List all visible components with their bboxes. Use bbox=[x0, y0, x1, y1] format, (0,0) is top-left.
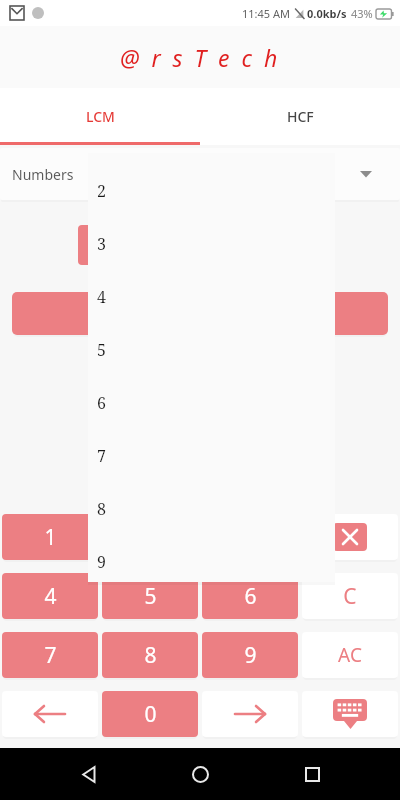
staticText: 5 bbox=[97, 339, 106, 361]
staticText: 7 bbox=[97, 445, 106, 467]
button[interactable]: 4 bbox=[2, 573, 98, 619]
staticText: 0.0kb/s bbox=[307, 6, 347, 21]
button[interactable]: 6 bbox=[202, 573, 298, 619]
button[interactable]: 9 bbox=[202, 632, 298, 678]
button[interactable]: 0 bbox=[102, 691, 198, 737]
button[interactable]: 7 bbox=[2, 632, 98, 678]
button[interactable]: AC bbox=[302, 632, 398, 678]
button[interactable]: 5 bbox=[88, 323, 335, 376]
button[interactable]: 8 bbox=[102, 632, 198, 678]
staticText: 6 bbox=[97, 392, 106, 414]
other: Open dropdown bbox=[360, 168, 372, 180]
staticText: 2 bbox=[97, 180, 106, 202]
staticText: 5 bbox=[144, 582, 157, 611]
staticText: 11:45 AM bbox=[242, 6, 290, 21]
staticText: 43% bbox=[351, 6, 373, 21]
button[interactable]: 6 bbox=[88, 376, 335, 429]
staticText: Numbers bbox=[12, 165, 74, 184]
button[interactable]: 1 bbox=[2, 514, 98, 560]
button[interactable]: Delete bbox=[302, 514, 398, 560]
button[interactable]: LCM bbox=[0, 88, 200, 145]
button[interactable]: Next bbox=[202, 691, 298, 737]
staticText: LCM bbox=[86, 107, 115, 126]
staticText: 6 bbox=[244, 582, 257, 611]
staticText: 8 bbox=[97, 498, 106, 520]
button[interactable]: HCF bbox=[200, 88, 400, 145]
button[interactable]: 2 bbox=[102, 514, 198, 560]
button[interactable]: Com-Multiplication bbox=[12, 292, 388, 335]
button[interactable]: 8 bbox=[88, 482, 335, 535]
button[interactable]: Recent apps bbox=[288, 750, 336, 798]
staticText: 9 bbox=[244, 641, 257, 670]
staticText: 4 bbox=[97, 286, 106, 308]
button[interactable]: Numbers bbox=[0, 148, 400, 200]
button[interactable]: 9 bbox=[88, 535, 335, 588]
staticText: @ r s T e c h bbox=[120, 42, 281, 73]
staticText: 4 bbox=[44, 582, 57, 611]
staticText: C bbox=[343, 582, 357, 611]
button[interactable]: Hide keyboard bbox=[302, 691, 398, 737]
staticText: 7 bbox=[44, 641, 57, 670]
staticText: 0 bbox=[144, 700, 157, 729]
button[interactable]: Home bbox=[176, 750, 224, 798]
button[interactable] bbox=[78, 225, 118, 265]
staticText: 8 bbox=[144, 641, 157, 670]
staticText: 9 bbox=[97, 551, 106, 573]
button[interactable]: Back bbox=[64, 750, 112, 798]
staticText: 1 bbox=[44, 523, 57, 552]
button[interactable]: 5 bbox=[102, 573, 198, 619]
other: Delete bbox=[333, 523, 367, 551]
staticText: 3 bbox=[97, 233, 106, 255]
staticText: HCF bbox=[287, 107, 314, 126]
button[interactable]: Previous bbox=[2, 691, 98, 737]
button[interactable]: 3 bbox=[88, 217, 335, 270]
button[interactable]: C bbox=[302, 573, 398, 619]
staticText: AC bbox=[338, 642, 362, 668]
button[interactable]: 4 bbox=[88, 270, 335, 323]
button[interactable]: 2 bbox=[88, 164, 335, 217]
button[interactable]: 7 bbox=[88, 429, 335, 482]
